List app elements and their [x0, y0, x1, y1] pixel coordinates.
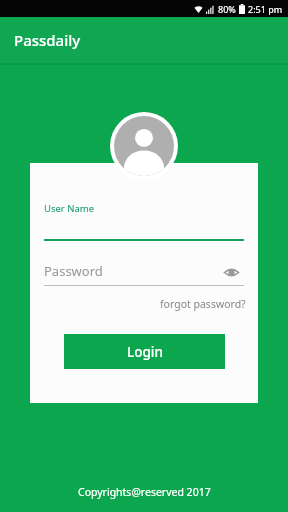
- staticText: Password: [44, 262, 103, 280]
- button[interactable]: Password: [30, 260, 258, 290]
- staticText: 80%: [218, 3, 236, 15]
- staticText: forgot password?: [160, 297, 246, 311]
- staticText: 2:51 pm: [248, 3, 283, 15]
- staticText: Login: [127, 343, 163, 361]
- button[interactable]: forgot password?: [160, 294, 248, 314]
- staticText: User Name: [44, 202, 95, 215]
- button[interactable]: User Name: [30, 193, 258, 243]
- staticText: Passdaily: [14, 30, 81, 50]
- button[interactable]: Login: [64, 334, 225, 369]
- button[interactable]: Show password: [220, 261, 242, 283]
- staticText: Copyrights@reserved 2017: [78, 485, 211, 499]
